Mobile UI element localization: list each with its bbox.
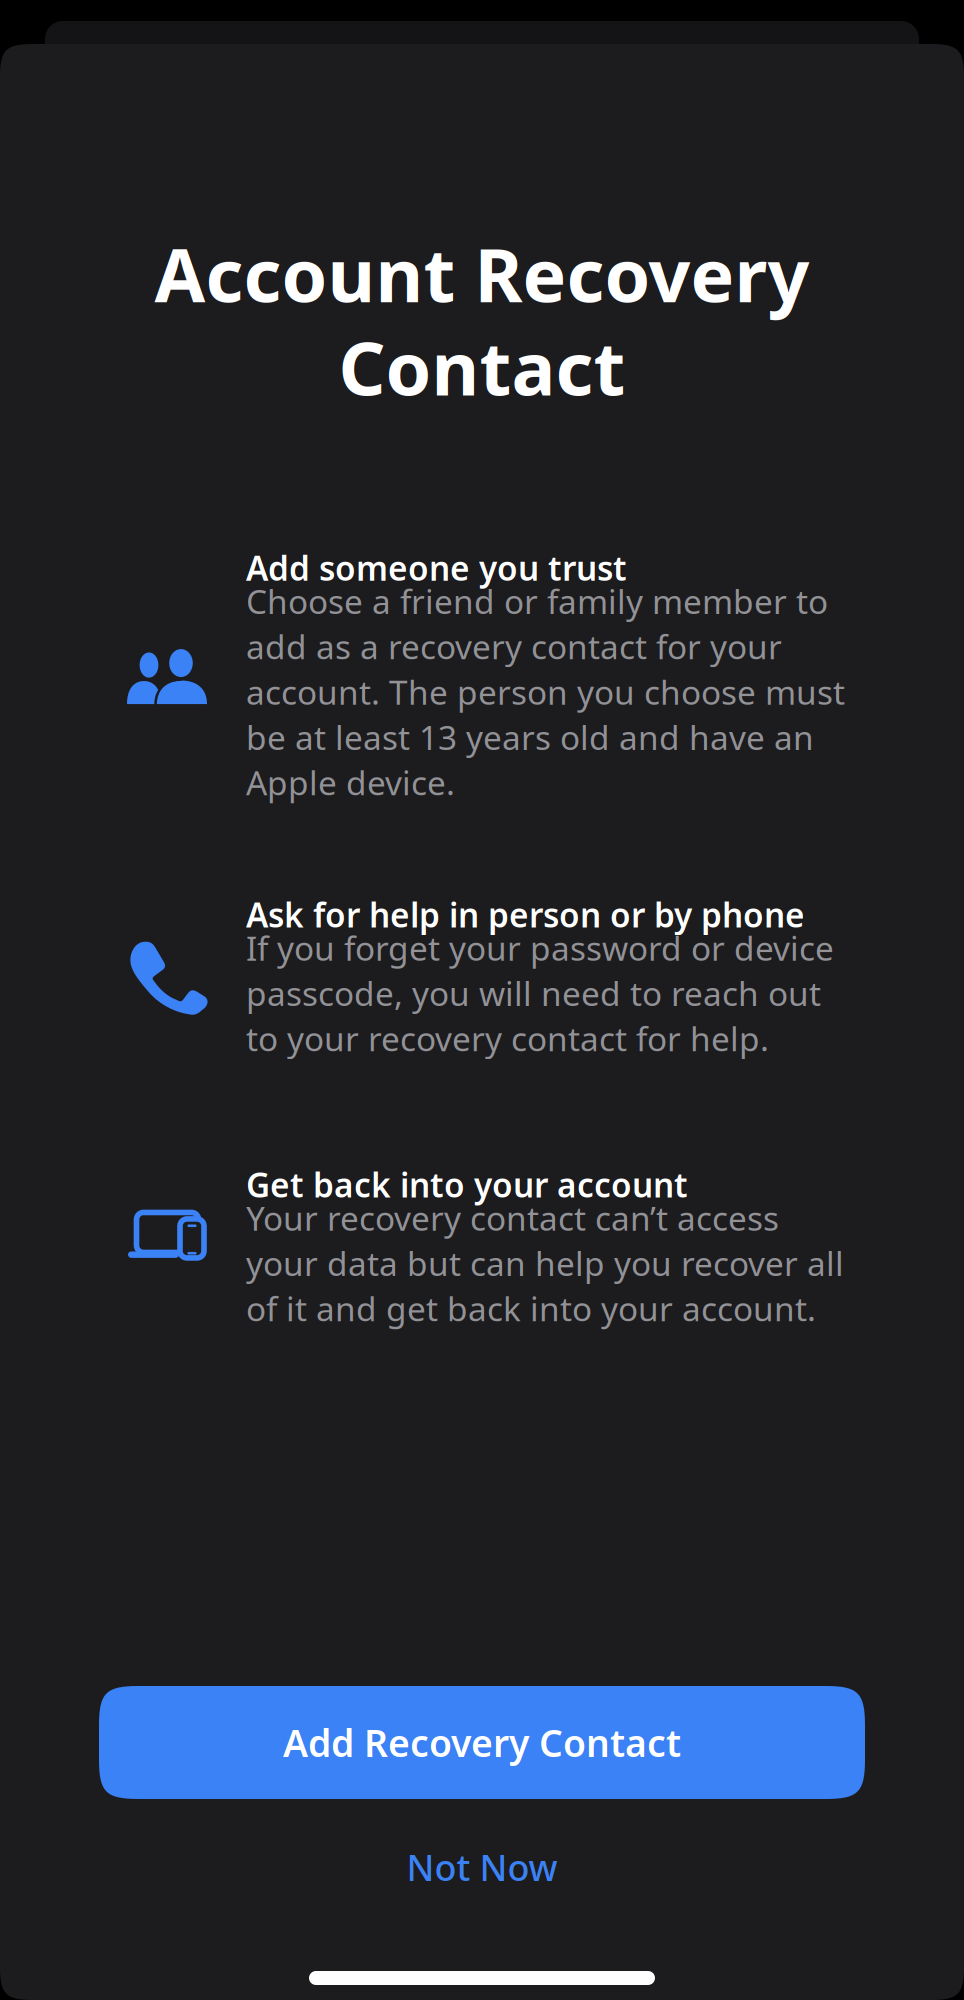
staticText: Add someone you trust (246, 546, 627, 590)
button[interactable]: Not Now (99, 1799, 865, 1935)
staticText: Add Recovery Contact (283, 1718, 681, 1767)
staticText: Get back into your account (246, 1162, 688, 1207)
button[interactable]: Add Recovery Contact (99, 1686, 865, 1799)
staticText: Contact (338, 318, 625, 416)
staticText: Your recovery contact can’t access your … (246, 1196, 844, 1330)
staticText: Account Recovery (154, 225, 809, 322)
staticText: If you forget your password or device pa… (246, 926, 834, 1060)
staticText: Choose a friend or family member to add … (246, 579, 845, 804)
staticText: Ask for help in person or by phone (246, 892, 805, 937)
staticText: Not Now (406, 1843, 557, 1891)
